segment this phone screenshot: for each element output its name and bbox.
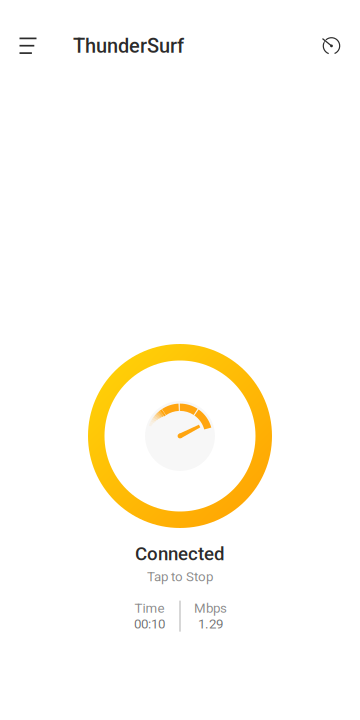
- staticText: Mbps: [194, 600, 227, 616]
- button[interactable]: Connected, tap to stop: [88, 344, 272, 528]
- staticText: Connected: [135, 543, 225, 565]
- staticText: Tap to Stop: [147, 569, 213, 584]
- staticText: Time: [134, 600, 164, 616]
- staticText: 00:10: [134, 616, 165, 632]
- button[interactable]: Menu: [10, 28, 46, 64]
- staticText: ThunderSurf: [73, 34, 184, 58]
- staticText: 1.29: [198, 616, 223, 632]
- button[interactable]: Speed test: [314, 28, 350, 64]
